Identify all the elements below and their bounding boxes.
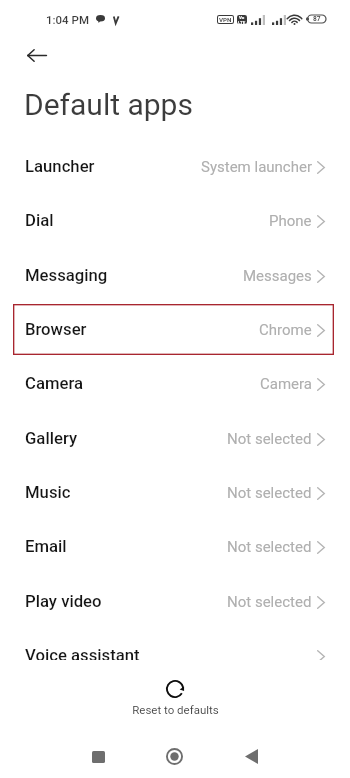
staticText: Not selected — [227, 593, 312, 611]
staticText: Chrome — [259, 321, 312, 339]
staticText: Phone — [269, 212, 312, 230]
staticText: 87 — [313, 15, 321, 23]
button[interactable]: Gallery — [0, 412, 350, 466]
staticText: Not selected — [227, 484, 312, 502]
staticText: System launcher — [201, 158, 312, 176]
staticText: VPN — [219, 16, 232, 23]
button[interactable]: Reset to defaults — [0, 680, 350, 716]
button[interactable]: Launcher — [0, 140, 350, 194]
staticText: Music — [25, 483, 71, 503]
staticText: Not selected — [227, 538, 312, 556]
staticText: Launcher — [25, 157, 95, 177]
staticText: Email — [25, 537, 67, 557]
staticText: Not selected — [227, 430, 312, 448]
staticText: Camera — [25, 374, 84, 394]
staticText: Browser — [25, 320, 87, 340]
staticText: Play video — [25, 592, 102, 612]
staticText: Vo — [239, 15, 245, 20]
button[interactable]: Voice assistant — [0, 629, 350, 660]
staticText: Camera — [260, 375, 312, 393]
staticText: Dial — [25, 211, 54, 231]
staticText: Messages — [243, 267, 312, 285]
staticText: Gallery — [25, 429, 78, 449]
staticText: 1:04 PM — [46, 13, 89, 26]
button[interactable]: Play video — [0, 575, 350, 629]
button[interactable]: Dial — [0, 194, 350, 248]
button[interactable]: Browser — [0, 303, 350, 357]
button[interactable]: Back — [232, 735, 270, 778]
staticText: Voice assistant — [25, 646, 140, 660]
button[interactable]: Messaging — [0, 249, 350, 303]
staticText: LTE — [238, 20, 246, 24]
button[interactable]: Home — [155, 735, 193, 778]
button[interactable]: Back — [14, 42, 58, 68]
staticText: Reset to defaults — [132, 703, 219, 716]
button[interactable]: Email — [0, 520, 350, 574]
button[interactable]: Music — [0, 466, 350, 520]
staticText: Messaging — [25, 266, 108, 286]
staticText: Default apps — [24, 87, 193, 122]
button[interactable]: Recents — [79, 735, 117, 778]
button[interactable]: Camera — [0, 357, 350, 411]
